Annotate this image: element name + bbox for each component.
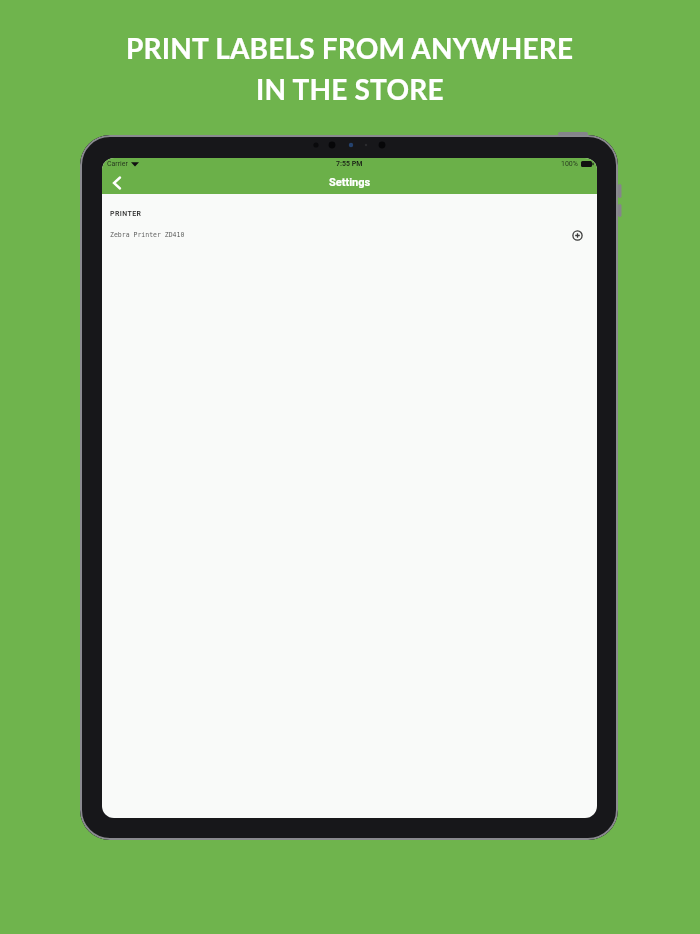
staticText: Settings [329,176,371,189]
staticText: 100% [561,160,578,168]
staticText: Carrier [107,160,128,168]
staticText: Zebra Printer ZD410 [110,231,185,239]
staticText: 7:55 PM [336,160,363,168]
staticText: PRINT LABELS FROM ANYWHERE [126,31,574,65]
staticText: IN THE STORE [256,72,444,106]
button[interactable] [108,174,126,192]
staticText: PRINTER [110,210,142,218]
button[interactable]: Zebra Printer ZD410 [110,226,583,244]
